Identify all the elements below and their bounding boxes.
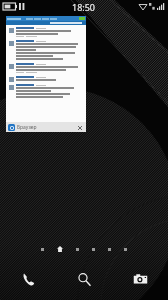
button[interactable]: Phone xyxy=(0,266,56,292)
staticText: 18:50 xyxy=(72,1,96,13)
button[interactable]: Search xyxy=(56,266,112,292)
button[interactable]: Camera xyxy=(112,266,168,292)
staticText: Браузер xyxy=(17,124,37,131)
button[interactable]: Close xyxy=(75,123,84,132)
button[interactable]: Браузер xyxy=(6,16,86,132)
